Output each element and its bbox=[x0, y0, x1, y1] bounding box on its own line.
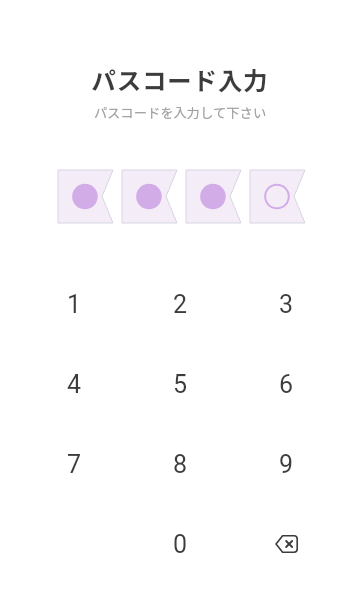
button[interactable]: Backspace bbox=[233, 504, 339, 584]
button[interactable]: 3 bbox=[233, 264, 339, 344]
staticText: 2 bbox=[173, 290, 188, 319]
staticText: 6 bbox=[279, 370, 294, 399]
staticText: 3 bbox=[279, 290, 294, 319]
button[interactable]: 6 bbox=[233, 344, 339, 424]
staticText: 1 bbox=[67, 290, 82, 319]
button[interactable]: 1 bbox=[21, 264, 127, 344]
staticText: 5 bbox=[173, 370, 188, 399]
staticText: 4 bbox=[67, 370, 82, 399]
button[interactable]: 9 bbox=[233, 424, 339, 504]
button[interactable]: 2 bbox=[127, 264, 233, 344]
button[interactable]: 7 bbox=[21, 424, 127, 504]
button[interactable]: 5 bbox=[127, 344, 233, 424]
button[interactable]: 4 bbox=[21, 344, 127, 424]
staticText: 8 bbox=[173, 450, 188, 479]
staticText: パスコードを入力して下さい bbox=[0, 103, 360, 122]
button[interactable]: 0 bbox=[127, 504, 233, 584]
staticText: 0 bbox=[173, 530, 188, 559]
staticText: 7 bbox=[67, 450, 82, 479]
staticText: 9 bbox=[279, 450, 294, 479]
staticText: パスコード入力 bbox=[0, 62, 360, 97]
button[interactable]: 8 bbox=[127, 424, 233, 504]
